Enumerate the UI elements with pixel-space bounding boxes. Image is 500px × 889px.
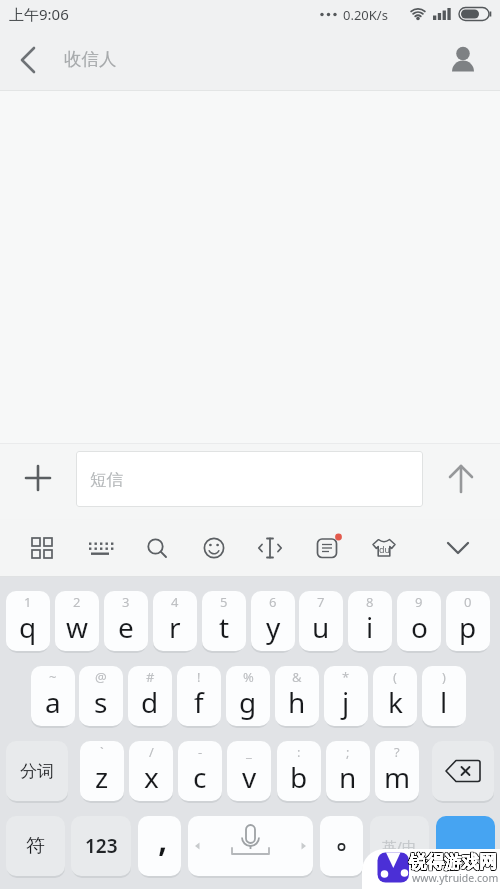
button[interactable]: 分词 xyxy=(6,741,68,801)
staticText: 锐得游戏网 xyxy=(408,852,496,874)
staticText: 锐得游戏网 xyxy=(409,851,497,873)
button[interactable]: & xyxy=(275,666,319,726)
staticText: ! xyxy=(197,668,201,686)
staticText: e xyxy=(118,608,134,646)
button[interactable]: - xyxy=(178,741,222,801)
button[interactable] xyxy=(432,741,494,801)
button[interactable] xyxy=(78,526,122,570)
staticText: c xyxy=(193,758,207,796)
staticText: f xyxy=(194,683,204,721)
button[interactable]: 1 xyxy=(6,591,50,651)
staticText: r xyxy=(169,608,181,646)
button[interactable]: 9 xyxy=(397,591,441,651)
staticText: # xyxy=(146,668,155,686)
button[interactable]: 短信 xyxy=(76,451,423,507)
staticText: * xyxy=(342,668,350,686)
staticText: h xyxy=(288,683,306,721)
button[interactable]: 符 xyxy=(6,816,65,876)
staticText: i xyxy=(366,608,374,646)
button[interactable]: 123 xyxy=(71,816,131,876)
button[interactable] xyxy=(439,456,483,500)
staticText: g xyxy=(239,683,257,721)
button[interactable] xyxy=(436,526,480,570)
button[interactable] xyxy=(441,38,485,82)
button[interactable]: ~ xyxy=(31,666,75,726)
staticText: k xyxy=(388,683,403,721)
staticText: j xyxy=(342,683,350,721)
button[interactable] xyxy=(362,526,406,570)
button[interactable] xyxy=(320,816,363,876)
staticText: 收信人 xyxy=(64,48,117,70)
staticText: m xyxy=(384,758,411,796)
button[interactable]: ( xyxy=(373,666,417,726)
button[interactable]: # xyxy=(128,666,172,726)
button[interactable]: ? xyxy=(375,741,419,801)
button[interactable] xyxy=(192,526,236,570)
button[interactable]: , xyxy=(138,816,181,876)
staticText: q xyxy=(19,608,37,646)
button[interactable]: 8 xyxy=(348,591,392,651)
button[interactable] xyxy=(305,526,349,570)
button[interactable]: ! xyxy=(177,666,221,726)
staticText: 7 xyxy=(317,593,325,611)
staticText: 锐得游戏网 xyxy=(409,852,497,874)
staticText: 5 xyxy=(220,593,228,611)
staticText: 123 xyxy=(85,833,118,859)
staticText: 锐得游戏网 xyxy=(409,851,497,873)
button[interactable] xyxy=(188,816,313,876)
staticText: v xyxy=(242,758,257,796)
button[interactable]: 4 xyxy=(153,591,197,651)
staticText: 锐得游戏网 xyxy=(409,851,497,873)
button[interactable] xyxy=(20,526,64,570)
staticText: ) xyxy=(442,668,446,686)
staticText: 锐得游戏网 xyxy=(409,850,497,872)
staticText: 3 xyxy=(122,593,130,611)
button[interactable] xyxy=(8,38,52,82)
staticText: 9 xyxy=(415,593,423,611)
button[interactable]: ; xyxy=(326,741,370,801)
button[interactable]: 5 xyxy=(202,591,246,651)
button[interactable]: 7 xyxy=(299,591,343,651)
staticText: z xyxy=(95,758,109,796)
button[interactable]: 2 xyxy=(55,591,99,651)
button[interactable]: % xyxy=(226,666,270,726)
staticText: x xyxy=(144,758,159,796)
button[interactable]: ) xyxy=(422,666,466,726)
staticText: l xyxy=(440,683,448,721)
staticText: 锐得游戏网 xyxy=(410,850,498,872)
staticText: u xyxy=(312,608,330,646)
staticText: d xyxy=(141,683,159,721)
button[interactable] xyxy=(135,526,179,570)
staticText: : xyxy=(297,743,301,761)
button[interactable]: 6 xyxy=(251,591,295,651)
staticText: ; xyxy=(346,743,350,761)
button[interactable]: 0 xyxy=(446,591,490,651)
staticText: 2 xyxy=(73,593,81,611)
button[interactable] xyxy=(436,816,495,876)
staticText: o xyxy=(411,608,428,646)
staticText: 6 xyxy=(269,593,277,611)
staticText: , xyxy=(158,816,168,862)
staticText: 锐得游戏网 xyxy=(410,851,498,873)
staticText: 0.20K/s xyxy=(343,6,388,24)
staticText: a xyxy=(45,683,61,721)
staticText: b xyxy=(290,758,308,796)
staticText: w xyxy=(66,608,89,646)
button[interactable] xyxy=(248,526,292,570)
button[interactable]: * xyxy=(324,666,368,726)
button[interactable]: : xyxy=(277,741,321,801)
button[interactable] xyxy=(16,456,60,500)
staticText: ( xyxy=(393,668,397,686)
button[interactable]: 3 xyxy=(104,591,148,651)
staticText: du xyxy=(379,543,391,555)
button[interactable]: _ xyxy=(227,741,271,801)
staticText: _ xyxy=(246,743,252,761)
button[interactable]: / xyxy=(129,741,173,801)
staticText: s xyxy=(94,683,108,721)
staticText: 4 xyxy=(171,593,179,611)
staticText: www.ytruide.com xyxy=(412,871,499,885)
button[interactable]: 英/中 xyxy=(370,816,429,876)
staticText: 1 xyxy=(24,593,32,611)
button[interactable]: @ xyxy=(79,666,123,726)
button[interactable]: ` xyxy=(80,741,124,801)
